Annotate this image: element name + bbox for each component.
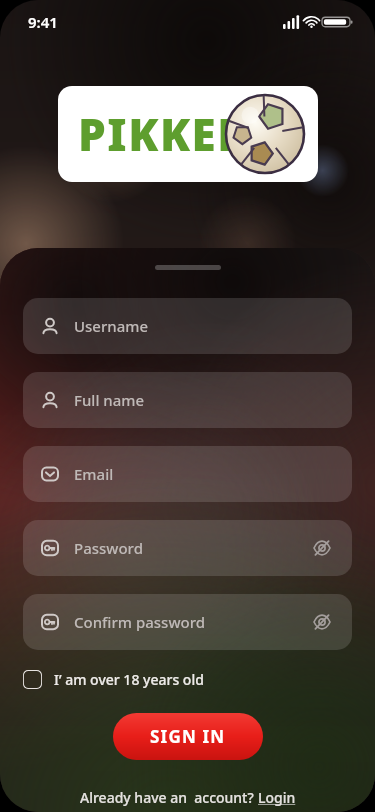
staticText: Email bbox=[74, 464, 114, 484]
staticText: Password bbox=[74, 538, 143, 558]
button[interactable]: Full name bbox=[23, 372, 352, 428]
button[interactable]: Email bbox=[23, 446, 352, 502]
staticText: 9:41 bbox=[28, 12, 58, 32]
staticText: I’ am over 18 years old bbox=[54, 670, 204, 689]
button[interactable]: Show password bbox=[309, 609, 335, 635]
button[interactable]: I’ am over 18 years old bbox=[23, 670, 204, 689]
button[interactable]: Show password bbox=[309, 535, 335, 561]
staticText: PIKKED bbox=[78, 104, 252, 164]
button[interactable]: Login bbox=[258, 788, 296, 807]
staticText: Username bbox=[74, 316, 149, 336]
button[interactable]: Password bbox=[23, 520, 352, 576]
button[interactable]: Username bbox=[23, 298, 352, 354]
staticText: SIGN IN bbox=[150, 725, 226, 748]
staticText: Full name bbox=[74, 390, 145, 410]
button[interactable]: SIGN IN bbox=[113, 713, 263, 760]
staticText: Login bbox=[258, 788, 296, 807]
staticText: Confirm password bbox=[74, 612, 206, 632]
button[interactable]: Confirm password bbox=[23, 594, 352, 650]
staticText: Already have an account? bbox=[80, 788, 258, 807]
